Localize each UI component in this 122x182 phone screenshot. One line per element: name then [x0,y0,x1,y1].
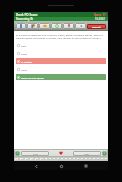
staticText: 1 [16,158,18,161]
staticText: Bank PO Exam [16,13,38,17]
button[interactable]: 8 [48,157,52,161]
button[interactable]: 15 [76,157,80,161]
staticText: Week [21,52,28,55]
button[interactable]: C. Winter [16,58,106,64]
button[interactable]: 20 [96,157,100,161]
staticText: 21 [101,158,104,161]
button[interactable]: Week [16,50,106,56]
staticText: Years [21,68,28,71]
staticText: 17 [85,158,88,161]
staticText: None all line above [21,76,44,79]
button[interactable]: Days [16,42,106,48]
staticText: 18 [89,158,92,161]
button[interactable]: 19 [92,157,96,161]
staticText: 6 [41,158,43,161]
button[interactable]: Mark [51,23,62,29]
button[interactable]: 4 [29,157,34,161]
button[interactable]: 22 [104,157,108,161]
button[interactable]: Next [73,151,101,156]
button[interactable]: 14 [72,157,76,161]
staticText: 4 [31,158,33,161]
staticText: 9 [53,158,55,161]
staticText: 7 [45,158,47,161]
button[interactable]: 11 [60,157,64,161]
button[interactable]: Prev [21,151,49,156]
button[interactable]: Submit [87,24,106,29]
staticText: C. Winter [21,60,32,63]
button[interactable]: Skip [75,23,86,29]
button[interactable]: 16 [80,157,84,161]
button[interactable]: Info [16,23,26,29]
staticText: 16 [81,158,84,161]
button[interactable]: 18 [88,157,92,161]
button[interactable]: Colours [27,23,38,29]
staticText: Prev [33,152,38,155]
staticText: 5 [36,158,38,161]
button[interactable]: 17 [84,157,88,161]
staticText: 19 [93,158,96,161]
button[interactable]: 1 [14,157,19,161]
button[interactable]: 7 [44,157,48,161]
staticText: 8 [49,158,51,161]
button[interactable]: Years [16,66,106,72]
button[interactable]: 12 [64,157,68,161]
button[interactable]: 5 [34,157,39,161]
staticText: Reasoning Sk [16,17,34,21]
staticText: 3 [26,158,28,161]
button[interactable]: Recents [83,163,89,169]
button[interactable]: 6 [39,157,44,161]
button[interactable]: 13 [68,157,72,161]
staticText: 12 [65,158,68,161]
staticText: 20 [97,158,100,161]
button[interactable]: 2 [19,157,24,161]
button[interactable]: First question [15,151,20,156]
button[interactable]: Bookmark [39,23,50,29]
staticText: 8. If there is selection only in policy,… [16,33,106,39]
staticText: Next [84,152,90,155]
staticText: Submit [92,25,101,28]
staticText: 2 [21,158,23,161]
staticText: 10 [57,158,60,161]
staticText: 14 [73,158,76,161]
button[interactable]: Last question [102,151,107,156]
staticText: Days [21,44,27,47]
staticText: Ques 11 [94,13,106,17]
staticText: 15 [77,158,80,161]
staticText: 13 [69,158,72,161]
button[interactable]: Flag [63,23,74,29]
button[interactable]: None all line above [16,74,106,80]
staticText: 16:39:51 [95,17,106,21]
button[interactable]: 21 [100,157,104,161]
staticText: 22 [105,158,108,161]
button[interactable]: 9 [52,157,56,161]
button[interactable]: Back [33,163,39,169]
staticText: 11 [61,158,64,161]
button[interactable]: 3 [24,157,29,161]
button[interactable]: Favourite [50,149,72,157]
button[interactable]: 10 [56,157,60,161]
button[interactable]: Home [58,163,64,169]
